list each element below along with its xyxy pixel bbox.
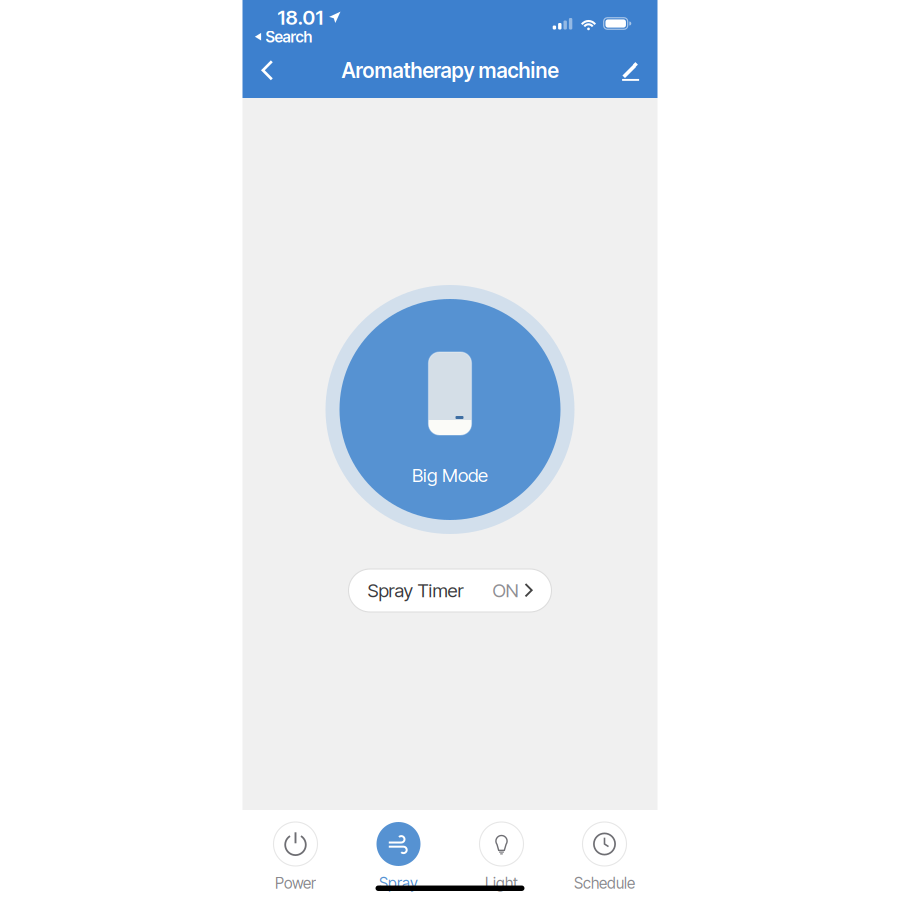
staticText: 18.01 xyxy=(277,5,323,30)
staticText: Power xyxy=(275,874,316,893)
button[interactable]: Light xyxy=(450,822,553,900)
staticText: Spray xyxy=(379,874,418,893)
button[interactable]: Spray Timer xyxy=(348,569,551,612)
staticText: Spray Timer xyxy=(367,579,463,602)
button[interactable]: Schedule xyxy=(553,822,656,900)
staticText: ON xyxy=(492,579,518,602)
button[interactable]: Spray xyxy=(347,822,450,900)
button[interactable]: Back xyxy=(261,46,305,94)
staticText: Big Mode xyxy=(412,464,488,487)
button[interactable]: Big Mode xyxy=(325,285,574,534)
staticText: Aromatherapy machine xyxy=(341,58,558,83)
button[interactable]: Edit xyxy=(599,46,639,94)
staticText: Search xyxy=(265,28,312,46)
button[interactable]: Power xyxy=(244,822,347,900)
staticText: Light xyxy=(485,874,518,893)
staticText: Schedule xyxy=(574,874,635,893)
